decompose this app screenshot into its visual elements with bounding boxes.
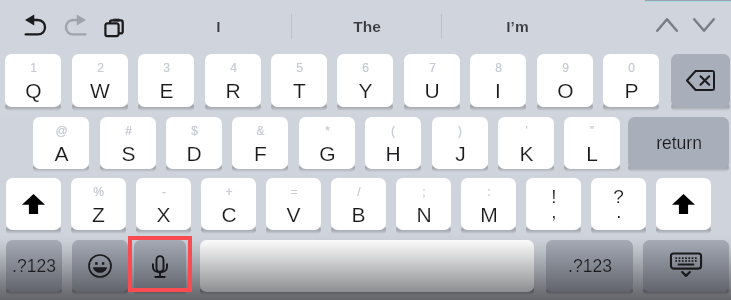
staticText: B bbox=[351, 203, 366, 226]
button[interactable]: $ bbox=[166, 117, 222, 169]
staticText: I bbox=[216, 18, 221, 35]
staticText: .?123 bbox=[568, 256, 612, 276]
button[interactable]: Undo bbox=[25, 16, 47, 36]
staticText: .?123 bbox=[12, 256, 56, 276]
staticText: C bbox=[221, 203, 237, 226]
staticText: ” bbox=[590, 124, 594, 137]
staticText: Y bbox=[358, 79, 373, 102]
staticText: 0 bbox=[628, 61, 635, 74]
staticText: T bbox=[293, 79, 306, 102]
button[interactable]: I’m bbox=[442, 7, 592, 45]
button[interactable]: 9 bbox=[537, 54, 593, 107]
staticText: Z bbox=[92, 203, 105, 226]
staticText: * bbox=[325, 124, 330, 137]
button[interactable]: 4 bbox=[205, 54, 261, 107]
staticText: G bbox=[319, 142, 336, 165]
button[interactable]: 6 bbox=[337, 54, 393, 107]
button[interactable]: Emoji bbox=[72, 240, 128, 292]
button[interactable]: .?123 bbox=[6, 240, 62, 292]
button[interactable]: ) bbox=[432, 117, 488, 169]
staticText: H bbox=[385, 142, 401, 165]
button[interactable]: * bbox=[299, 117, 355, 169]
button[interactable]: ! bbox=[526, 178, 581, 230]
button[interactable]: return bbox=[628, 117, 729, 169]
button[interactable]: 1 bbox=[5, 54, 61, 107]
staticText: $ bbox=[191, 124, 198, 137]
button[interactable]: ( bbox=[365, 117, 421, 169]
staticText: P bbox=[624, 79, 639, 102]
staticText: + bbox=[225, 185, 233, 198]
button[interactable]: ? bbox=[591, 178, 646, 230]
staticText: ’ bbox=[525, 124, 528, 137]
staticText: = bbox=[290, 185, 298, 198]
staticText: X bbox=[156, 203, 171, 226]
button[interactable]: Paste bbox=[100, 15, 124, 39]
staticText: & bbox=[256, 124, 265, 137]
staticText: return bbox=[656, 133, 702, 153]
staticText: The bbox=[353, 18, 381, 35]
staticText: I’m bbox=[506, 18, 529, 35]
button[interactable]: Backspace bbox=[671, 54, 730, 107]
staticText: 8 bbox=[495, 61, 502, 74]
button[interactable]: Shift bbox=[656, 178, 711, 230]
staticText: . bbox=[616, 201, 622, 222]
staticText: - bbox=[162, 185, 166, 198]
button[interactable]: .?123 bbox=[546, 240, 633, 292]
staticText: : bbox=[487, 185, 491, 198]
button[interactable]: Shift bbox=[6, 178, 61, 230]
button[interactable]: ” bbox=[564, 117, 620, 169]
staticText: A bbox=[54, 142, 69, 165]
button[interactable]: Previous suggestions bbox=[656, 18, 678, 32]
staticText: ) bbox=[458, 124, 462, 137]
button[interactable]: 3 bbox=[138, 54, 194, 107]
button[interactable]: Space bbox=[200, 240, 534, 292]
staticText: U bbox=[424, 79, 440, 102]
staticText: ? bbox=[613, 186, 624, 207]
button[interactable]: I bbox=[145, 7, 292, 45]
button[interactable]: / bbox=[331, 178, 386, 230]
button[interactable]: % bbox=[71, 178, 126, 230]
staticText: 1 bbox=[30, 61, 37, 74]
button[interactable]: - bbox=[136, 178, 191, 230]
button[interactable]: + bbox=[201, 178, 256, 230]
staticText: I bbox=[495, 79, 501, 102]
staticText: Q bbox=[25, 79, 42, 102]
button[interactable]: : bbox=[461, 178, 516, 230]
button[interactable]: & bbox=[232, 117, 288, 169]
staticText: 7 bbox=[429, 61, 436, 74]
staticText: 5 bbox=[296, 61, 303, 74]
button[interactable]: The bbox=[292, 7, 442, 45]
staticText: / bbox=[357, 185, 361, 198]
staticText: K bbox=[519, 142, 534, 165]
staticText: ( bbox=[391, 124, 395, 137]
button[interactable]: 0 bbox=[603, 54, 659, 107]
staticText: M bbox=[480, 203, 498, 226]
button[interactable]: Redo bbox=[64, 16, 86, 36]
button[interactable]: Dictate bbox=[134, 240, 186, 292]
staticText: @ bbox=[55, 124, 68, 137]
staticText: S bbox=[121, 142, 136, 165]
staticText: L bbox=[586, 142, 598, 165]
staticText: D bbox=[186, 142, 202, 165]
staticText: O bbox=[557, 79, 574, 102]
button[interactable]: 2 bbox=[72, 54, 128, 107]
button[interactable]: = bbox=[266, 178, 321, 230]
staticText: 2 bbox=[97, 61, 104, 74]
staticText: N bbox=[416, 203, 432, 226]
staticText: W bbox=[90, 79, 110, 102]
button[interactable]: Next suggestions bbox=[693, 18, 715, 32]
staticText: V bbox=[286, 203, 301, 226]
staticText: J bbox=[455, 142, 466, 165]
button[interactable]: Hide keyboard bbox=[643, 240, 729, 292]
staticText: 3 bbox=[163, 61, 170, 74]
staticText: # bbox=[125, 124, 132, 137]
button[interactable]: 7 bbox=[404, 54, 460, 107]
button[interactable]: @ bbox=[33, 117, 89, 169]
button[interactable]: 8 bbox=[470, 54, 526, 107]
button[interactable]: 5 bbox=[271, 54, 327, 107]
button[interactable]: ; bbox=[396, 178, 451, 230]
staticText: R bbox=[225, 79, 241, 102]
button[interactable]: ’ bbox=[498, 117, 554, 169]
staticText: ! bbox=[551, 186, 557, 207]
button[interactable]: # bbox=[100, 117, 156, 169]
